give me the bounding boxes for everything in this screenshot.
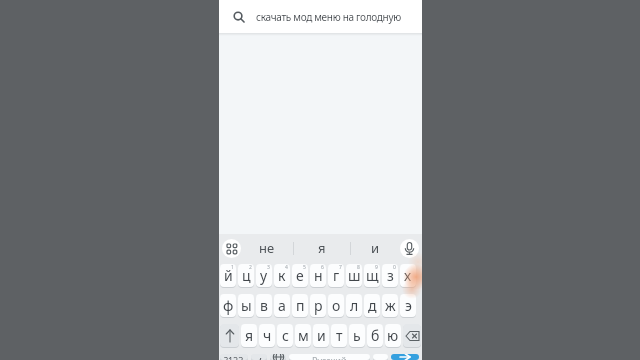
staticText: е	[296, 266, 304, 285]
button[interactable]: щ	[364, 264, 380, 287]
staticText: б	[371, 326, 380, 345]
staticText: д	[368, 296, 377, 315]
button[interactable]: я	[241, 324, 257, 347]
staticText: н	[314, 266, 323, 285]
button[interactable]: т	[331, 324, 347, 347]
staticText: /	[257, 354, 262, 360]
button[interactable]: не	[241, 234, 293, 262]
button[interactable]: /	[251, 354, 267, 360]
staticText: 6	[321, 264, 324, 271]
staticText: 3	[267, 264, 270, 271]
button[interactable]	[222, 239, 241, 258]
staticText: с	[282, 326, 289, 345]
button[interactable]: л	[346, 294, 362, 317]
button[interactable]: ц	[238, 264, 254, 287]
staticText: р	[314, 296, 323, 315]
staticText: ч	[263, 326, 272, 345]
staticText: ю	[387, 326, 399, 345]
button[interactable]: р	[310, 294, 326, 317]
button[interactable]: б	[367, 324, 383, 347]
staticText: п	[296, 296, 305, 315]
staticText: скачать мод меню на голодную	[256, 10, 401, 24]
staticText: не	[259, 239, 275, 257]
staticText: 1	[231, 264, 234, 271]
button[interactable]: м	[295, 324, 311, 347]
staticText: ы	[241, 296, 252, 315]
button[interactable]: э	[400, 294, 416, 317]
staticText: 2	[249, 264, 252, 271]
staticText: э	[405, 296, 412, 315]
staticText: з	[387, 266, 394, 285]
button[interactable]: п	[292, 294, 308, 317]
staticText: 7	[339, 264, 342, 271]
staticText: ш	[348, 266, 361, 285]
button[interactable]: я	[294, 234, 350, 262]
staticText: ц	[242, 266, 251, 285]
button[interactable]: ?123	[220, 354, 248, 360]
staticText: и	[371, 239, 380, 257]
button[interactable]: н	[310, 264, 326, 287]
button[interactable]: д	[364, 294, 380, 317]
button[interactable]: к	[274, 264, 290, 287]
staticText: 4	[285, 264, 288, 271]
button[interactable]: ф	[220, 294, 236, 317]
staticText: ?123	[224, 354, 244, 360]
button[interactable]: и	[351, 234, 400, 262]
staticText: я	[245, 326, 254, 345]
button[interactable]: й	[220, 264, 236, 287]
button[interactable]: с	[277, 324, 293, 347]
staticText: о	[332, 296, 341, 315]
staticText: 0	[393, 264, 396, 271]
button[interactable]: у	[256, 264, 272, 287]
button[interactable]: в	[256, 294, 272, 317]
staticText: Русский	[312, 354, 347, 360]
button[interactable]: е	[292, 264, 308, 287]
button[interactable]: о	[328, 294, 344, 317]
staticText: я	[318, 239, 326, 257]
staticText: ф	[223, 296, 234, 315]
button[interactable]	[391, 354, 419, 360]
staticText: х	[404, 266, 412, 285]
staticText: 5	[303, 264, 306, 271]
button[interactable]	[403, 324, 421, 347]
staticText: т	[336, 326, 343, 345]
staticText: к	[278, 266, 286, 285]
button[interactable]: .	[373, 354, 388, 360]
button[interactable]: ю	[385, 324, 401, 347]
button[interactable]: з	[382, 264, 398, 287]
button[interactable]: ь	[349, 324, 365, 347]
button[interactable]: ч	[259, 324, 275, 347]
button[interactable]: скачать мод меню на голодную	[219, 0, 422, 33]
button[interactable]: ж	[382, 294, 398, 317]
button[interactable]: г	[328, 264, 344, 287]
staticText: л	[350, 296, 359, 315]
staticText: 9	[375, 264, 378, 271]
button[interactable]: х	[400, 264, 416, 287]
button[interactable]	[220, 324, 239, 347]
staticText: и	[317, 326, 326, 345]
staticText: в	[260, 296, 268, 315]
button[interactable]	[400, 239, 419, 258]
button[interactable]: Русский	[289, 354, 370, 360]
staticText: ь	[353, 326, 361, 345]
button[interactable]: и	[313, 324, 329, 347]
staticText: й	[224, 266, 233, 285]
button[interactable]: ш	[346, 264, 362, 287]
staticText: 8	[357, 264, 360, 271]
staticText: щ	[366, 266, 379, 285]
button[interactable]: ы	[238, 294, 254, 317]
button[interactable]: а	[274, 294, 290, 317]
staticText: ж	[385, 296, 396, 315]
staticText: м	[298, 326, 309, 345]
button[interactable]	[270, 354, 286, 360]
staticText: а	[278, 296, 286, 315]
staticText: у	[260, 266, 268, 285]
staticText: г	[333, 266, 340, 285]
